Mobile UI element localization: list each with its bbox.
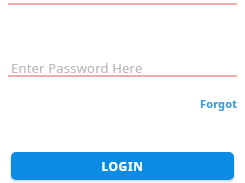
button[interactable]: LOGIN — [11, 152, 234, 180]
button[interactable]: Enter Password Here — [8, 56, 237, 77]
staticText: LOGIN — [101, 158, 144, 174]
staticText: Forgot Password? — [141, 96, 237, 114]
staticText: Enter Password Here — [11, 59, 143, 77]
button[interactable]: Forgot Password? — [141, 96, 237, 114]
